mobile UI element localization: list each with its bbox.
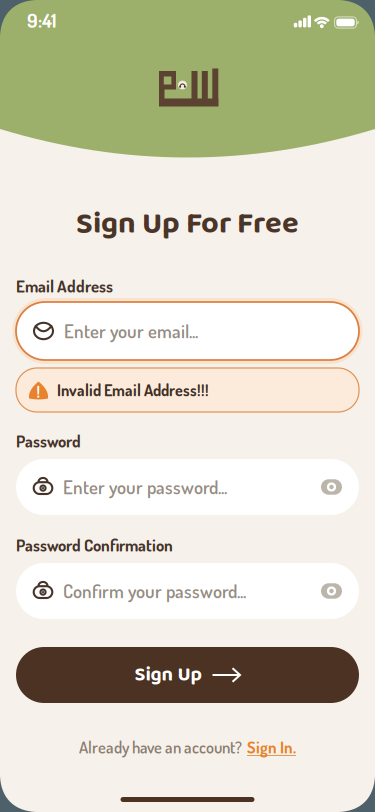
staticText: ! — [36, 381, 40, 402]
button[interactable]: Show password — [321, 583, 342, 599]
staticText: Enter your email... — [64, 319, 198, 343]
button[interactable]: Enter your password... — [16, 459, 359, 515]
staticText: Confirm your password... — [63, 579, 246, 603]
staticText: Sign Up — [134, 659, 202, 691]
staticText: Already have an account? — [79, 737, 242, 757]
staticText: Sign In. — [247, 737, 296, 757]
staticText: Enter your password... — [63, 475, 227, 499]
staticText: Invalid Email Address!!! — [57, 380, 209, 400]
button[interactable]: Sign Up — [16, 647, 359, 703]
staticText: 9:41 — [27, 8, 57, 32]
staticText: Password — [16, 430, 81, 452]
staticText: Email Address — [16, 275, 113, 297]
button[interactable]: Confirm your password... — [16, 563, 359, 619]
button[interactable]: Show password — [321, 479, 342, 495]
staticText: Sign Up For Free — [76, 199, 299, 248]
button[interactable]: Sign In. — [247, 737, 296, 757]
staticText: Password Confirmation — [16, 534, 173, 556]
button[interactable]: Enter your email... — [16, 302, 359, 360]
